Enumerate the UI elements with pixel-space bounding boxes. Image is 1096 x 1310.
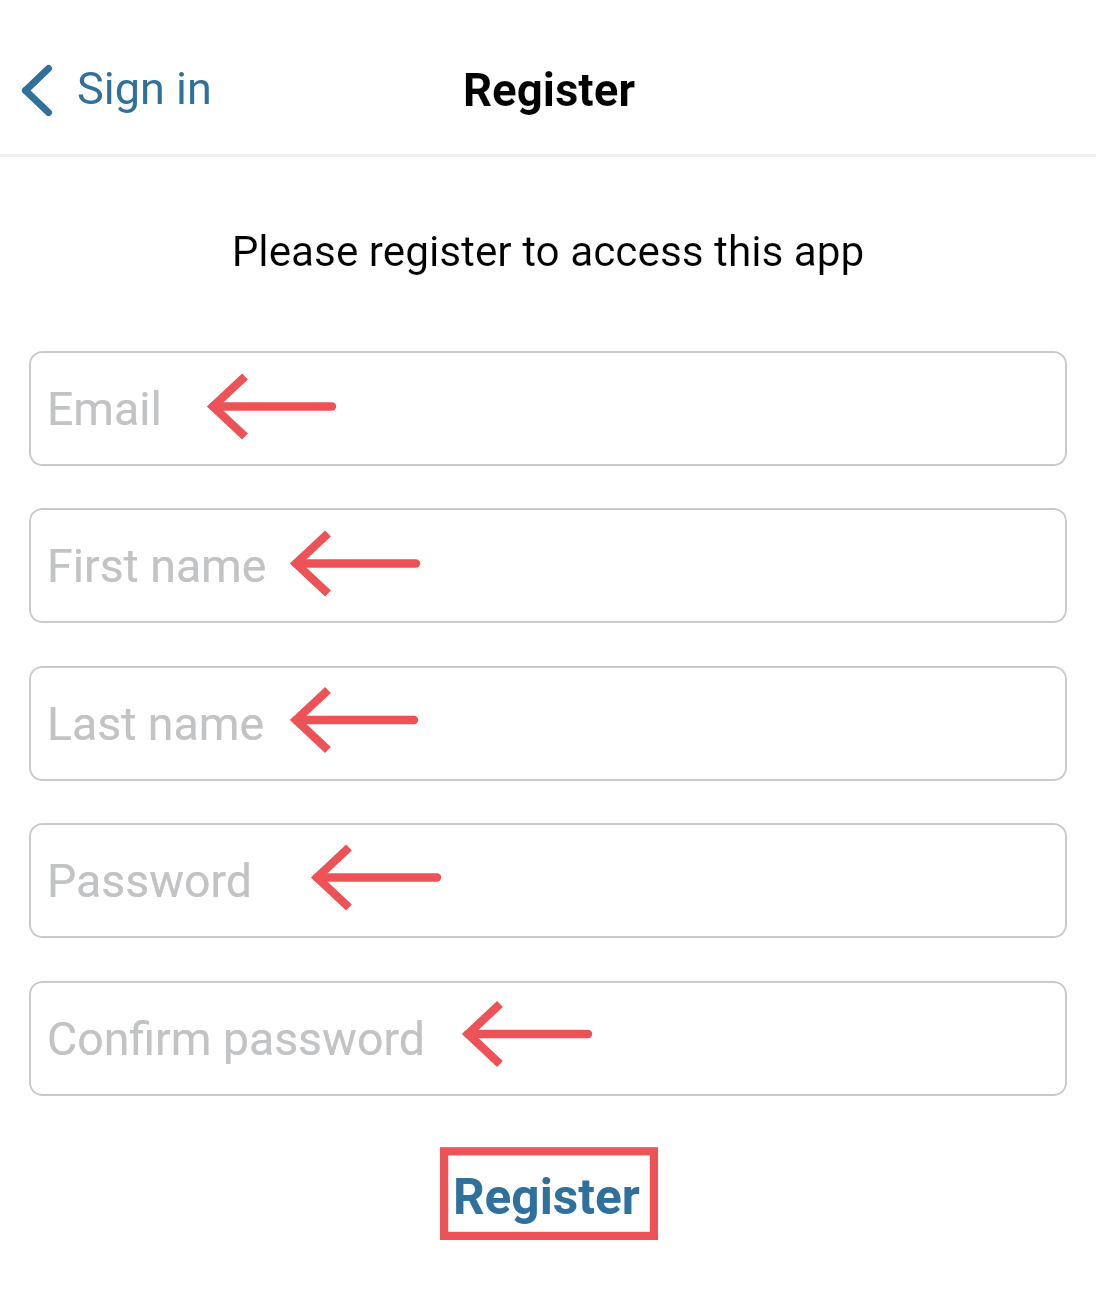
button[interactable]: Confirm password bbox=[29, 981, 1067, 1096]
staticText: Please register to access this app bbox=[0, 227, 1096, 277]
staticText: Register bbox=[463, 64, 636, 117]
button[interactable]: Back to Sign in bbox=[12, 54, 222, 127]
staticText: Register bbox=[453, 1168, 640, 1226]
other: Back to Sign in bbox=[22, 65, 52, 116]
staticText: Last name bbox=[47, 697, 264, 751]
staticText: Password bbox=[47, 854, 252, 908]
staticText: Email bbox=[47, 382, 162, 436]
button[interactable]: Email bbox=[29, 351, 1067, 466]
staticText: Confirm password bbox=[47, 1012, 425, 1066]
staticText: First name bbox=[47, 539, 267, 593]
staticText: Sign in bbox=[77, 62, 212, 115]
button[interactable]: Register bbox=[437, 1147, 656, 1240]
button[interactable]: First name bbox=[29, 508, 1067, 623]
button[interactable]: Password bbox=[29, 823, 1067, 938]
button[interactable]: Last name bbox=[29, 666, 1067, 781]
